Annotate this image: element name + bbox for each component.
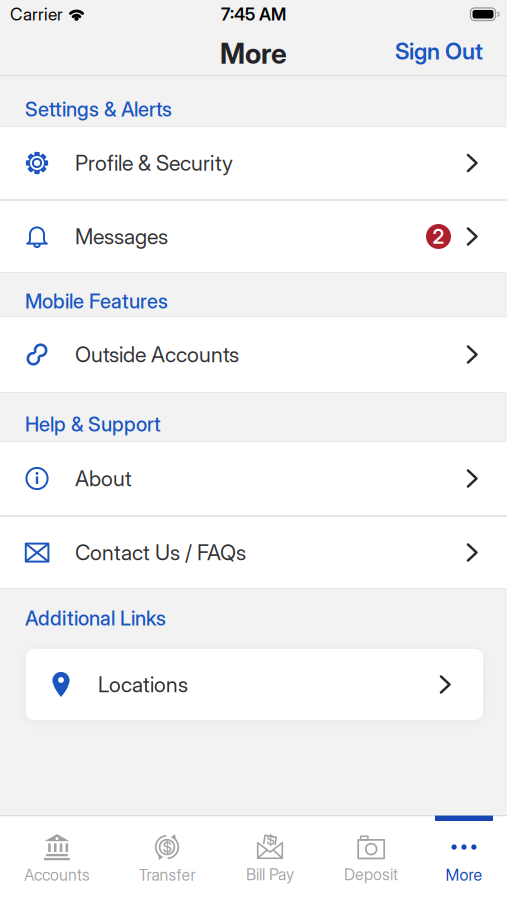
- button[interactable]: Sign Out: [395, 38, 483, 65]
- staticText: Sign Out: [395, 38, 483, 65]
- button[interactable]: Outside Accounts: [0, 317, 507, 392]
- staticText: Locations: [98, 672, 188, 697]
- staticText: Contact Us / FAQs: [75, 540, 246, 565]
- staticText: 7:45 AM: [221, 4, 286, 24]
- staticText: Messages: [75, 224, 168, 249]
- staticText: Profile & Security: [75, 150, 233, 176]
- staticText: Help & Support: [25, 412, 161, 436]
- button[interactable]: Locations: [26, 649, 483, 720]
- staticText: Transfer: [138, 866, 195, 884]
- button[interactable]: $: [222, 828, 318, 890]
- staticText: Outside Accounts: [75, 342, 239, 367]
- staticText: Bill Pay: [246, 865, 294, 884]
- button[interactable]: More: [416, 828, 507, 890]
- staticText: More: [220, 37, 287, 70]
- button[interactable]: Accounts: [9, 828, 105, 890]
- staticText: Accounts: [24, 866, 90, 884]
- staticText: Carrier: [10, 4, 63, 24]
- staticText: Settings & Alerts: [25, 97, 172, 121]
- button[interactable]: Contact Us / FAQs: [0, 517, 507, 588]
- button[interactable]: Messages: [0, 201, 507, 272]
- staticText: Deposit: [344, 865, 398, 884]
- staticText: Additional Links: [25, 606, 166, 630]
- button[interactable]: Profile & Security: [0, 127, 507, 199]
- staticText: About: [75, 466, 132, 491]
- button[interactable]: About: [0, 442, 507, 515]
- button[interactable]: Deposit: [323, 828, 419, 890]
- button[interactable]: $: [119, 828, 215, 890]
- staticText: More: [445, 866, 482, 884]
- staticText: Mobile Features: [25, 289, 168, 313]
- staticText: $: [267, 832, 275, 848]
- staticText: 2: [432, 225, 444, 248]
- staticText: $: [163, 839, 172, 856]
